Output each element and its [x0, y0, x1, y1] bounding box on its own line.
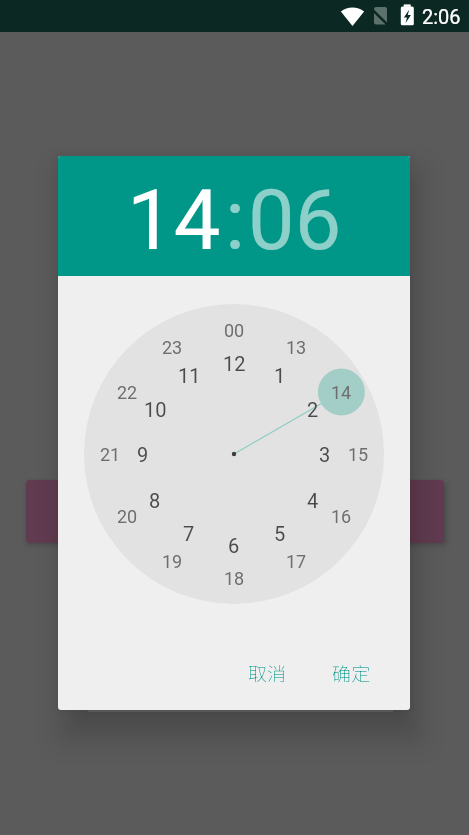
staticText: 6	[228, 534, 240, 557]
staticText: 取消	[248, 659, 287, 687]
staticText: 18	[224, 568, 245, 589]
button[interactable]	[26, 480, 444, 543]
staticText: 2	[307, 398, 319, 421]
staticText: 2:06	[422, 5, 461, 28]
button[interactable]: 取消	[237, 653, 297, 693]
staticText: 14	[127, 172, 221, 269]
staticText: 13	[286, 337, 307, 358]
staticText: 16	[331, 506, 352, 527]
staticText: 22	[117, 382, 138, 403]
staticText: 00	[224, 320, 245, 341]
staticText: 10	[144, 398, 167, 421]
staticText: 8	[149, 489, 161, 512]
staticText: 17	[286, 551, 307, 572]
staticText: :	[225, 172, 246, 269]
staticText: 20	[117, 506, 138, 527]
staticText: 9	[137, 443, 149, 466]
staticText: 4	[307, 489, 319, 512]
staticText: 5	[274, 522, 286, 545]
staticText: 23	[162, 337, 183, 358]
staticText: 7	[183, 522, 195, 545]
staticText: 11	[178, 364, 201, 387]
staticText: 19	[162, 551, 183, 572]
button[interactable]: 确定	[321, 653, 381, 693]
staticText: 14	[331, 382, 352, 403]
staticText: 15	[348, 444, 369, 465]
staticText: 06	[248, 172, 342, 269]
staticText: 3	[319, 443, 331, 466]
staticText: 12	[223, 352, 246, 375]
staticText: 21	[100, 444, 121, 465]
staticText: 确定	[332, 659, 371, 687]
staticText: 1	[274, 364, 286, 387]
